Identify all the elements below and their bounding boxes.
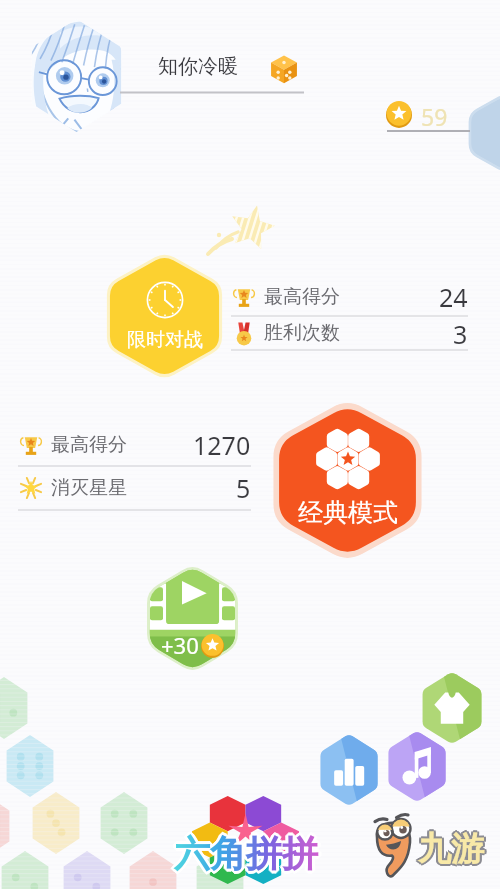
staticText: 六角拼拼 bbox=[174, 831, 318, 876]
staticText: 最高得分 bbox=[264, 285, 340, 309]
staticText: 九游 bbox=[418, 828, 484, 870]
staticText: 六角拼拼 bbox=[173, 829, 317, 874]
staticText: 经典模式 bbox=[298, 497, 398, 528]
staticText: 九游 bbox=[418, 826, 484, 868]
staticText: 六角拼拼 bbox=[174, 828, 318, 873]
staticText: 六角拼拼 bbox=[176, 830, 320, 875]
staticText: 限时对战 bbox=[127, 328, 203, 352]
staticText: 九游 bbox=[420, 829, 486, 871]
staticText: 六角拼拼 bbox=[175, 833, 319, 878]
staticText: 3 bbox=[453, 317, 468, 349]
staticText: 六角拼拼 bbox=[174, 834, 318, 879]
staticText: 5 bbox=[236, 471, 251, 505]
staticText: 九游 bbox=[420, 828, 486, 870]
staticText: 六角拼拼 bbox=[172, 830, 316, 875]
button[interactable]: 最高得分 bbox=[231, 279, 468, 317]
button[interactable]: 经典模式 bbox=[262, 399, 433, 562]
staticText: 六角拼拼 bbox=[176, 832, 320, 877]
staticText: 九游 bbox=[416, 829, 482, 871]
staticText: 知你冷暖 bbox=[158, 54, 238, 79]
staticText: 九游 bbox=[418, 830, 484, 872]
staticText: 六角拼拼 bbox=[175, 829, 319, 874]
button[interactable]: 限时对战 bbox=[98, 252, 231, 380]
staticText: 59 bbox=[421, 101, 448, 132]
staticText: 九游 bbox=[418, 826, 484, 868]
staticText: 六角拼拼 bbox=[171, 831, 315, 876]
staticText: 六角拼拼 bbox=[172, 832, 316, 877]
staticText: 九游 bbox=[416, 828, 482, 870]
staticText: 1270 bbox=[193, 428, 251, 462]
button[interactable]: Watch video for 30 stars bbox=[140, 564, 245, 673]
button[interactable]: 消灭星星 bbox=[18, 467, 251, 511]
button[interactable]: 胜利次数 bbox=[231, 317, 468, 351]
staticText: 六角拼拼 bbox=[173, 833, 317, 878]
staticText: +30 bbox=[161, 630, 199, 660]
button[interactable]: Player avatar bbox=[25, 19, 128, 132]
button[interactable]: Leaderboard bbox=[316, 734, 382, 806]
staticText: 九游 bbox=[416, 827, 482, 869]
button[interactable]: 最高得分 bbox=[18, 424, 251, 467]
staticText: 最高得分 bbox=[51, 433, 127, 457]
staticText: 胜利次数 bbox=[264, 321, 340, 345]
button[interactable]: Music bbox=[384, 731, 450, 802]
staticText: 24 bbox=[439, 280, 468, 314]
staticText: 九游 bbox=[420, 827, 486, 869]
staticText: 九游 bbox=[418, 830, 484, 872]
staticText: 六角拼拼 bbox=[177, 831, 321, 876]
staticText: 消灭星星 bbox=[51, 476, 127, 500]
button[interactable]: Skins bbox=[418, 672, 486, 744]
